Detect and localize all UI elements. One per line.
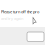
staticText: and try again [1, 16, 23, 21]
button[interactable]: Action [27, 32, 44, 41]
staticText: Please turn off the pro [1, 9, 39, 14]
